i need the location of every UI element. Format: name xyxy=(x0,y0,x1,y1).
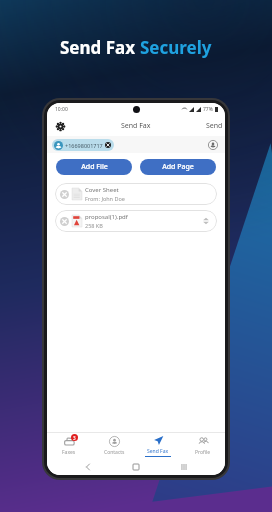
staticText: 258 KB xyxy=(85,222,103,229)
button[interactable]: Home xyxy=(129,460,143,474)
button[interactable]: Send Fax xyxy=(136,433,180,459)
staticText: proposal(1).pdf xyxy=(85,213,128,221)
staticText: Contacts xyxy=(104,449,125,456)
button[interactable]: +16698001717 xyxy=(47,136,225,153)
staticText: Send Fax xyxy=(147,448,169,455)
button[interactable]: Add Page xyxy=(140,159,216,175)
staticText: Faxes xyxy=(62,449,76,456)
staticText: 77% xyxy=(203,106,213,113)
button[interactable]: Remove xyxy=(55,210,217,232)
button[interactable]: Remove xyxy=(55,183,217,205)
button[interactable]: Remove xyxy=(59,216,69,226)
staticText: Send Fax xyxy=(60,36,140,59)
staticText: Send Fax xyxy=(121,121,151,131)
staticText: Profile xyxy=(195,449,211,456)
staticText: From: John Doe xyxy=(85,195,125,202)
button[interactable]: Add File xyxy=(56,159,132,175)
staticText: 10:00 xyxy=(55,106,68,113)
button[interactable]: Contacts xyxy=(92,433,136,459)
staticText: Add Page xyxy=(162,162,194,172)
staticText: 3 xyxy=(73,435,76,441)
staticText: Securely xyxy=(140,36,212,59)
button[interactable]: Send xyxy=(206,121,223,131)
staticText: +16698001717 xyxy=(65,142,103,149)
button[interactable]: Settings xyxy=(53,119,67,133)
button[interactable]: Pick contact xyxy=(207,139,219,151)
button[interactable]: Reorder xyxy=(201,216,211,226)
button[interactable]: Recents xyxy=(177,460,191,474)
button[interactable]: Profile xyxy=(181,433,225,459)
staticText: Cover Sheet xyxy=(85,186,119,194)
button[interactable]: Remove xyxy=(59,189,69,199)
staticText: Send xyxy=(206,121,223,131)
button[interactable]: Back xyxy=(81,460,95,474)
staticText: Add File xyxy=(81,162,108,172)
button[interactable]: 3 xyxy=(47,433,91,459)
